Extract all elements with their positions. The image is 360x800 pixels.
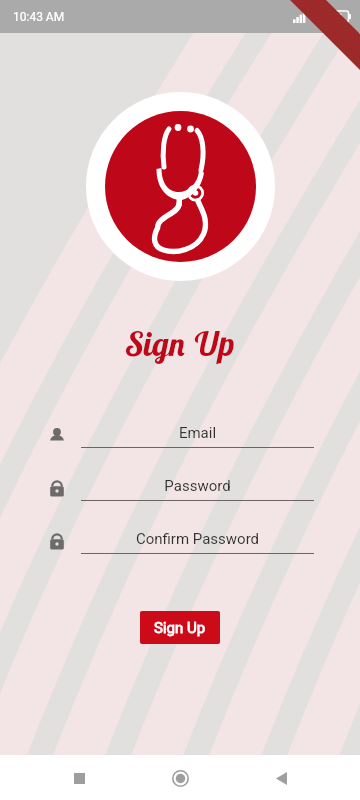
button[interactable]: Home [158, 756, 202, 800]
staticText: Sign Up [126, 323, 234, 364]
staticText: Password [81, 477, 314, 495]
button[interactable]: Recent apps [57, 756, 101, 800]
staticText: Email [81, 424, 314, 442]
button[interactable]: Back [259, 756, 303, 800]
staticText: 10:43 AM [13, 10, 65, 24]
staticText: Confirm Password [81, 530, 314, 548]
staticText: Sign Up [154, 619, 206, 637]
button[interactable]: Sign Up [140, 611, 220, 644]
